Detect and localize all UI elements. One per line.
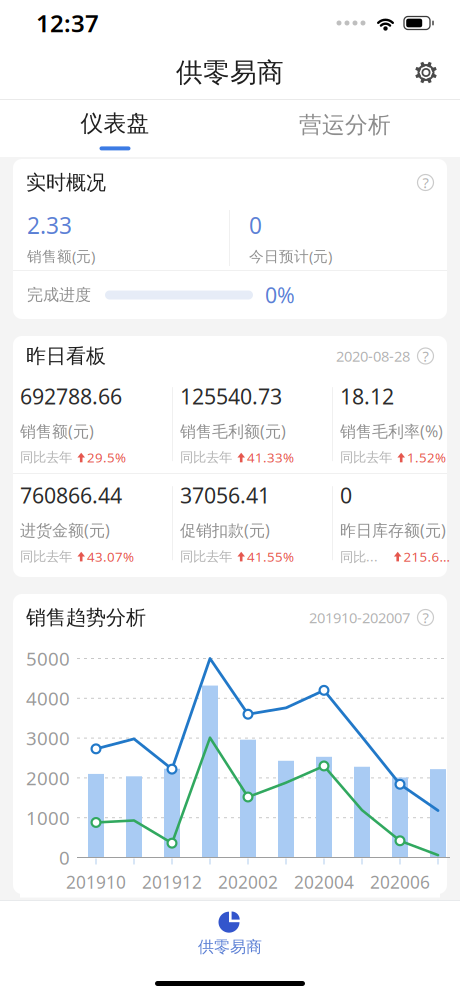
staticText: 760866.44 bbox=[20, 481, 122, 509]
staticText: 201912 bbox=[142, 870, 202, 893]
staticText: 今日预计(元) bbox=[249, 246, 332, 266]
staticText: 0 bbox=[249, 210, 262, 240]
staticText: 202004 bbox=[294, 870, 354, 893]
staticText: 202002 bbox=[218, 870, 278, 893]
staticText: 销售额(元) bbox=[27, 246, 95, 266]
staticText: 昨日库存额(元) bbox=[340, 519, 446, 540]
staticText: 昨日看板 bbox=[26, 344, 106, 368]
staticText: ? bbox=[422, 173, 428, 192]
staticText: 125540.73 bbox=[180, 382, 282, 410]
staticText: 202006 bbox=[370, 870, 430, 893]
staticText: 0 bbox=[340, 481, 352, 509]
staticText: 0 bbox=[59, 845, 70, 870]
staticText: 供零易商 bbox=[198, 937, 262, 957]
staticText: 215.68% bbox=[403, 548, 452, 565]
staticText: 完成进度 bbox=[27, 285, 91, 305]
staticText: ? bbox=[422, 608, 428, 627]
staticText: 同比去年 bbox=[180, 449, 232, 466]
staticText: ? bbox=[422, 346, 428, 366]
staticText: 3000 bbox=[26, 726, 70, 750]
staticText: 201910-202007 bbox=[309, 608, 410, 627]
staticText: 供零易商 bbox=[176, 56, 284, 89]
staticText: 同比去年 bbox=[20, 449, 72, 466]
button[interactable]: 供零易商 bbox=[165, 901, 295, 963]
button[interactable]: 仪表盘 bbox=[0, 100, 230, 157]
staticText: 同比去年 bbox=[340, 548, 388, 565]
staticText: 0% bbox=[265, 281, 295, 309]
staticText: 实时概况 bbox=[26, 170, 106, 195]
staticText: 同比去年 bbox=[20, 548, 72, 565]
staticText: 4000 bbox=[26, 686, 70, 711]
staticText: 同比去年 bbox=[180, 548, 232, 565]
staticText: 促销扣款(元) bbox=[180, 519, 270, 541]
button[interactable]: Settings bbox=[404, 50, 448, 94]
staticText: 销售毛利额(元) bbox=[180, 420, 286, 441]
staticText: 29.5% bbox=[87, 449, 126, 466]
staticText: 销售额(元) bbox=[20, 420, 94, 441]
staticText: 43.07% bbox=[87, 548, 134, 565]
staticText: 5000 bbox=[26, 646, 70, 671]
staticText: 18.12 bbox=[340, 382, 394, 410]
staticText: 2000 bbox=[26, 765, 70, 790]
staticText: 2.33 bbox=[27, 210, 72, 240]
staticText: 同比去年 bbox=[340, 449, 392, 466]
staticText: 进货金额(元) bbox=[20, 519, 110, 541]
staticText: 41.55% bbox=[247, 548, 294, 565]
staticText: 销售毛利率(%) bbox=[340, 420, 443, 441]
staticText: 销售趋势分析 bbox=[26, 605, 146, 630]
staticText: 201910 bbox=[66, 870, 126, 893]
staticText: 2020-08-28 bbox=[336, 346, 410, 366]
staticText: 41.33% bbox=[247, 449, 294, 466]
staticText: 仪表盘 bbox=[80, 110, 149, 137]
button[interactable]: 营运分析 bbox=[230, 100, 460, 157]
staticText: 营运分析 bbox=[299, 111, 391, 139]
staticText: 692788.66 bbox=[20, 382, 122, 410]
staticText: 37056.41 bbox=[180, 481, 270, 509]
staticText: 1000 bbox=[26, 805, 70, 830]
staticText: 1.52% bbox=[407, 449, 446, 466]
staticText: 12:37 bbox=[36, 7, 99, 39]
